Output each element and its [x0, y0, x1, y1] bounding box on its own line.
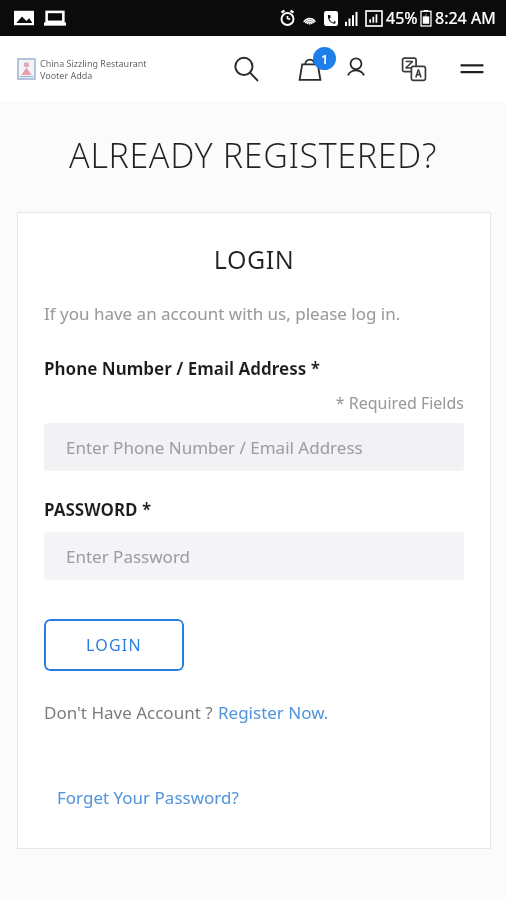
staticText: Vooter Adda	[40, 69, 93, 81]
button[interactable]: Search	[226, 49, 266, 89]
staticText: LOGIN	[86, 634, 142, 656]
staticText: 8:24 AM	[435, 7, 496, 29]
staticText: China Sizzling Restaurant	[40, 57, 147, 69]
staticText: Phone Number / Email Address *	[44, 357, 320, 380]
staticText: If you have an account with us, please l…	[44, 302, 401, 325]
button[interactable]: Menu	[452, 49, 492, 89]
staticText: 45%	[386, 7, 418, 29]
staticText: LOGIN	[17, 242, 491, 276]
button[interactable]: Enter Phone Number / Email Address	[44, 423, 464, 471]
staticText: Enter Phone Number / Email Address	[66, 436, 363, 459]
button[interactable]: LOGIN	[44, 619, 184, 671]
button[interactable]: Translate	[394, 49, 434, 89]
staticText: Register Now.	[218, 701, 329, 724]
staticText: * Required Fields	[44, 392, 464, 414]
staticText: Enter Password	[66, 545, 191, 568]
button[interactable]: China Sizzling Restaurant	[18, 57, 147, 81]
button[interactable]: Enter Password	[44, 532, 464, 580]
staticText: ALREADY REGISTERED?	[0, 132, 506, 178]
staticText: Forget Your Password?	[57, 786, 239, 809]
button[interactable]: Forget Your Password?	[57, 786, 239, 809]
staticText: 1	[321, 50, 329, 68]
button[interactable]: Account	[336, 49, 376, 89]
staticText: Don't Have Account ?	[44, 701, 218, 724]
button[interactable]: Cart, 1 item	[288, 47, 332, 91]
button[interactable]: Don't Have Account ?	[44, 701, 329, 724]
staticText: PASSWORD *	[44, 498, 152, 521]
